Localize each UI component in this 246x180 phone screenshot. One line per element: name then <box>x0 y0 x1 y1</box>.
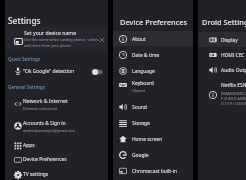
staticText: Quick Settings <box>8 56 41 62</box>
button[interactable]: Accounts & Sign in <box>5 118 108 132</box>
staticText: HDMI CEC <box>221 52 245 59</box>
button[interactable]: Set your device name <box>6 27 107 52</box>
button[interactable]: TV settings <box>5 167 108 180</box>
staticText: Ethernet connected <box>23 106 57 111</box>
staticText: Netflix ESN <box>221 82 246 89</box>
button[interactable]: Date & time <box>113 47 193 62</box>
button[interactable]: Netflix ESN <box>198 77 246 107</box>
staticText: TV settings <box>23 171 49 178</box>
staticText: Apps <box>23 142 35 149</box>
staticText: Display <box>221 37 238 44</box>
button[interactable]: Storage <box>113 115 193 130</box>
button[interactable]: Chromecast built-in <box>113 163 193 178</box>
staticText: Sound <box>132 104 147 111</box>
button[interactable]: HDMI CEC <box>198 47 246 62</box>
staticText: About <box>132 36 146 43</box>
staticText: Settings <box>8 15 41 26</box>
staticText: Gboard <box>132 88 145 93</box>
staticText: Google <box>132 152 149 159</box>
staticText: Keyboard <box>132 80 154 87</box>
staticText: Chromecast built-in <box>132 168 177 175</box>
staticText: Droid Settings <box>202 17 246 27</box>
button[interactable]: Device Preferences <box>5 152 108 166</box>
button[interactable]: Google <box>113 147 193 162</box>
button[interactable]: Display <box>198 32 246 47</box>
staticText: Use this name when casting photos, video… <box>24 37 100 42</box>
staticText: Device Preferences <box>23 156 67 163</box>
button[interactable]: Dismiss <box>96 34 107 45</box>
button[interactable]: Home screen <box>113 131 193 146</box>
staticText: Home screen <box>132 136 163 143</box>
staticText: NFANDROID2-PRV- P-SHIELD ANDROI D-TV-P=1… <box>221 91 246 106</box>
button[interactable]: About <box>113 31 193 46</box>
staticText: "Ok Google" detection <box>23 68 75 75</box>
button[interactable]: Language <box>113 63 193 78</box>
staticText: General Settings <box>8 84 46 90</box>
staticText: Set your device name <box>24 29 77 36</box>
staticText: Network & Internet <box>23 98 68 105</box>
button[interactable]: Keyboard <box>113 77 193 92</box>
staticText: Storage <box>132 120 150 127</box>
button[interactable]: Apps <box>5 138 108 152</box>
button[interactable]: Network & Internet <box>5 96 108 110</box>
staticText: Audio Output <box>221 67 246 74</box>
staticText: androidpexample@gmail.com <box>23 128 75 133</box>
button[interactable]: Audio Output <box>198 62 246 77</box>
staticText: Device Preferences <box>120 17 200 27</box>
staticText: Language <box>132 68 155 75</box>
staticText: Accounts & Sign in <box>23 120 66 127</box>
staticText: Date & time <box>132 52 160 59</box>
staticText: and more from your phone <box>24 43 72 48</box>
button[interactable]: Sound <box>113 99 193 114</box>
button[interactable]: "Ok Google" detection <box>5 64 108 78</box>
